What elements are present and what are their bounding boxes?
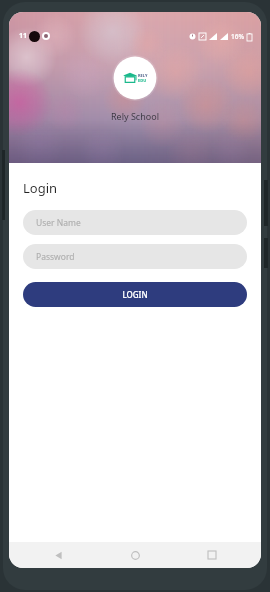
- staticText: 16%: [231, 32, 244, 41]
- staticText: EDU: [138, 78, 147, 83]
- staticText: LOGIN: [122, 289, 148, 300]
- button[interactable]: Recent apps: [184, 542, 240, 568]
- staticText: RELY: [138, 73, 148, 78]
- button[interactable]: Password: [23, 244, 247, 269]
- button[interactable]: User Name: [23, 210, 247, 235]
- staticText: Password: [36, 251, 75, 263]
- staticText: Login: [23, 179, 58, 197]
- button[interactable]: Home: [107, 542, 163, 568]
- staticText: Rely School: [111, 110, 159, 122]
- button[interactable]: LOGIN: [23, 282, 247, 307]
- staticText: User Name: [36, 217, 81, 229]
- staticText: 11: [19, 31, 28, 41]
- button[interactable]: Back: [30, 542, 86, 568]
